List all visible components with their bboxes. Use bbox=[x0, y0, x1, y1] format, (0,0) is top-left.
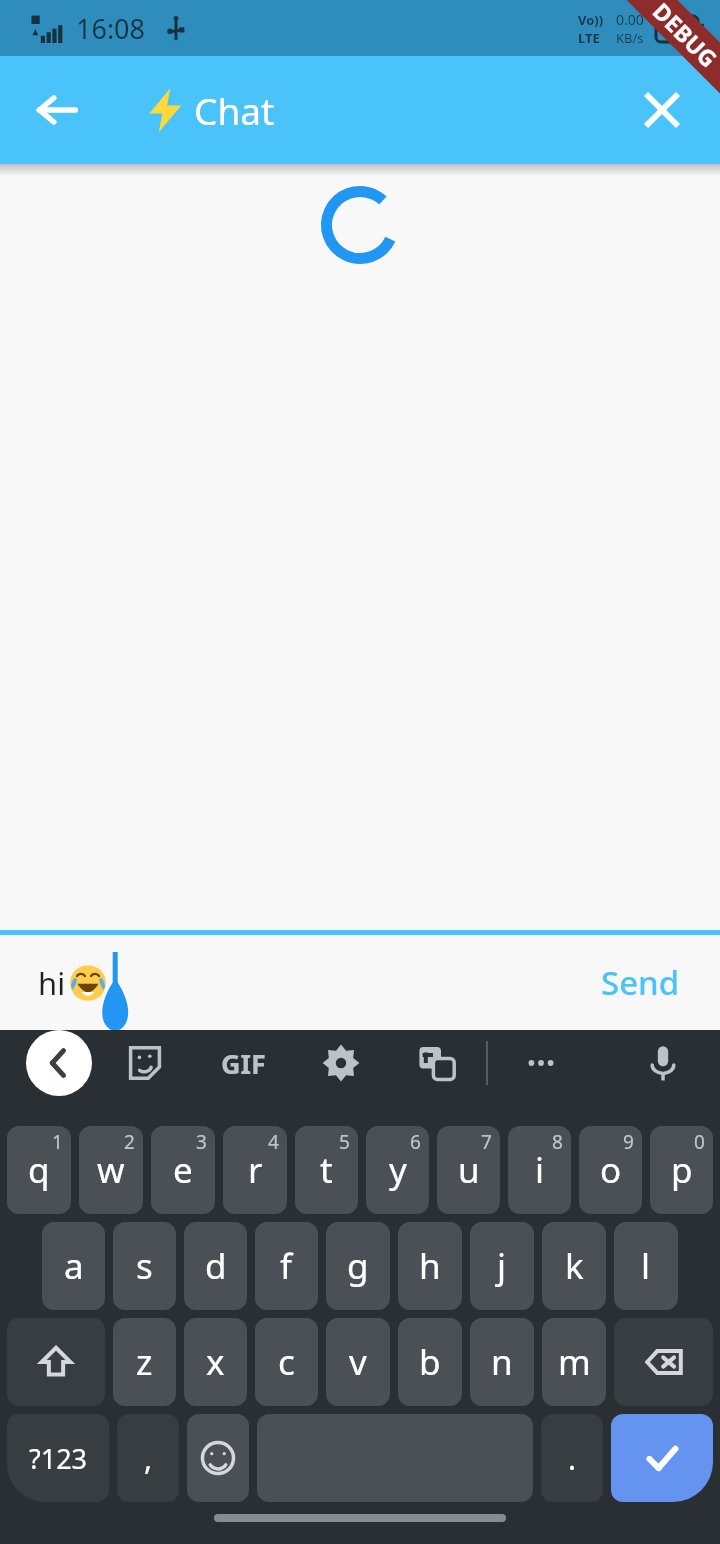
button[interactable]: q bbox=[7, 1126, 71, 1214]
button[interactable]: r bbox=[223, 1126, 287, 1214]
staticText: n bbox=[491, 1338, 513, 1386]
button[interactable]: p bbox=[650, 1126, 713, 1214]
staticText: o bbox=[600, 1146, 622, 1194]
staticText: 0 bbox=[694, 1129, 705, 1155]
button[interactable]: Back bbox=[26, 1030, 92, 1096]
staticText: 0.00 bbox=[616, 10, 644, 29]
button[interactable]: Back bbox=[20, 73, 94, 147]
button[interactable]: y bbox=[366, 1126, 429, 1214]
button[interactable]: GIF bbox=[210, 1030, 276, 1096]
staticText: hi bbox=[38, 962, 66, 1004]
button[interactable]: Backspace bbox=[614, 1318, 713, 1406]
staticText: KB/s bbox=[616, 29, 644, 47]
button[interactable]: c bbox=[255, 1318, 318, 1406]
staticText: a bbox=[64, 1242, 84, 1290]
button[interactable]: w bbox=[79, 1126, 143, 1214]
staticText: s bbox=[136, 1242, 153, 1290]
button[interactable]: ?123 bbox=[7, 1414, 109, 1502]
staticText: 8 bbox=[552, 1129, 563, 1155]
button[interactable]: Shift bbox=[7, 1318, 105, 1406]
staticText: , bbox=[144, 1438, 153, 1479]
staticText: t bbox=[320, 1146, 333, 1194]
button[interactable]: l bbox=[614, 1222, 678, 1310]
button[interactable]: , bbox=[117, 1414, 179, 1502]
staticText: c bbox=[278, 1338, 295, 1386]
staticText: p bbox=[671, 1146, 693, 1194]
button[interactable]: i bbox=[508, 1126, 571, 1214]
button[interactable]: More options bbox=[510, 1032, 572, 1094]
staticText: e bbox=[173, 1146, 193, 1194]
button[interactable]: b bbox=[398, 1318, 462, 1406]
button[interactable]: Enter bbox=[611, 1414, 713, 1502]
staticText: q bbox=[28, 1146, 50, 1194]
button[interactable]: j bbox=[470, 1222, 534, 1310]
button[interactable]: Translate bbox=[406, 1032, 468, 1094]
button[interactable]: g bbox=[326, 1222, 390, 1310]
staticText: g bbox=[347, 1242, 369, 1290]
staticText: r bbox=[248, 1146, 263, 1194]
staticText: 4 bbox=[268, 1129, 279, 1155]
staticText: 2 bbox=[124, 1129, 135, 1155]
staticText: d bbox=[205, 1242, 227, 1290]
button[interactable]: n bbox=[470, 1318, 534, 1406]
staticText: h bbox=[419, 1242, 441, 1290]
button[interactable]: f bbox=[255, 1222, 318, 1310]
button[interactable]: Emoji bbox=[187, 1414, 249, 1502]
staticText: LTE bbox=[578, 29, 600, 47]
button[interactable]: e bbox=[151, 1126, 215, 1214]
button[interactable]: z bbox=[113, 1318, 176, 1406]
button[interactable]: v bbox=[326, 1318, 390, 1406]
staticText: Chat bbox=[194, 85, 275, 135]
staticText: 3 bbox=[196, 1129, 207, 1155]
staticText: . bbox=[568, 1438, 577, 1479]
staticText: w bbox=[97, 1146, 125, 1194]
staticText: l bbox=[641, 1242, 651, 1290]
button[interactable]: u bbox=[437, 1126, 500, 1214]
button[interactable]: x bbox=[184, 1318, 247, 1406]
staticText: j bbox=[497, 1242, 507, 1290]
staticText: x bbox=[206, 1338, 225, 1386]
staticText: 9 bbox=[623, 1129, 634, 1155]
staticText: i bbox=[535, 1146, 545, 1194]
staticText: 50 bbox=[673, 20, 688, 38]
staticText: k bbox=[565, 1242, 584, 1290]
staticText: GIF bbox=[221, 1045, 266, 1082]
staticText: 7 bbox=[481, 1129, 492, 1155]
staticText: DEBUG bbox=[646, 0, 720, 74]
button[interactable]: o bbox=[579, 1126, 642, 1214]
staticText: m bbox=[558, 1338, 591, 1386]
staticText: v bbox=[349, 1338, 367, 1386]
button[interactable]: k bbox=[542, 1222, 606, 1310]
staticText: Send bbox=[601, 960, 680, 1005]
staticText: ?123 bbox=[29, 1440, 88, 1477]
button[interactable]: a bbox=[42, 1222, 105, 1310]
staticText: 6 bbox=[410, 1129, 421, 1155]
button[interactable]: m bbox=[542, 1318, 606, 1406]
button[interactable]: Send bbox=[601, 960, 680, 1005]
button[interactable]: Voice input bbox=[632, 1032, 694, 1094]
staticText: z bbox=[136, 1338, 153, 1386]
staticText: 1 bbox=[52, 1129, 63, 1155]
staticText: u bbox=[458, 1146, 480, 1194]
button[interactable]: t bbox=[295, 1126, 358, 1214]
button[interactable]: s bbox=[113, 1222, 176, 1310]
button[interactable]: Sticker bbox=[114, 1032, 176, 1094]
button[interactable]: Close bbox=[626, 74, 698, 146]
staticText: y bbox=[389, 1146, 407, 1194]
button[interactable]: . bbox=[541, 1414, 603, 1502]
staticText: Vo)) bbox=[578, 11, 604, 29]
staticText: 5 bbox=[339, 1129, 350, 1155]
staticText: 16:08 bbox=[76, 10, 146, 47]
button[interactable]: Settings bbox=[310, 1032, 372, 1094]
staticText: f bbox=[280, 1242, 293, 1290]
button[interactable]: d bbox=[184, 1222, 247, 1310]
staticText: b bbox=[419, 1338, 441, 1386]
button[interactable]: h bbox=[398, 1222, 462, 1310]
